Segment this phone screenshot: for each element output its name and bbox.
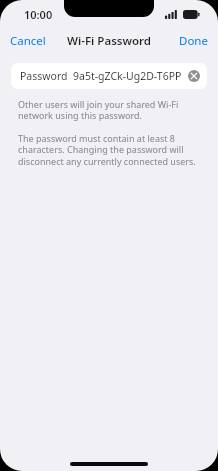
staticText: 10:00 (24, 7, 53, 22)
staticText: Done (179, 33, 208, 49)
button[interactable]: Password (11, 63, 207, 89)
staticText: Password (20, 69, 68, 83)
button[interactable]: Done (169, 29, 218, 53)
staticText: Cancel (10, 33, 46, 49)
button[interactable]: Clear text (186, 68, 202, 84)
staticText: 9a5t-gZCk-Ug2D-T6PP (73, 69, 182, 83)
staticText: Other users will join your shared Wi-Fi … (18, 98, 200, 122)
button[interactable]: Cancel (0, 29, 56, 53)
staticText: The password must contain at least 8 cha… (18, 132, 200, 168)
staticText: Wi-Fi Password (67, 33, 152, 49)
